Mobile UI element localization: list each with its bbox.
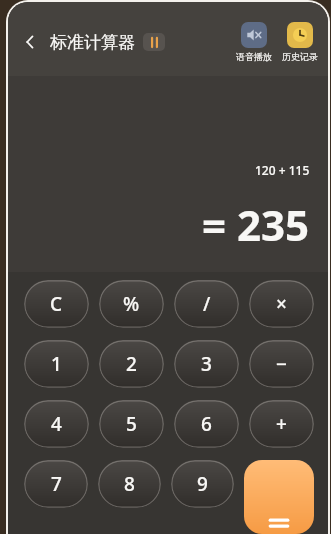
button[interactable]: 7 — [24, 460, 88, 508]
staticText: × — [276, 291, 287, 317]
staticText: 9 — [197, 471, 208, 497]
button[interactable] — [244, 460, 314, 534]
staticText: 120 + 115 — [255, 162, 310, 178]
button[interactable]: 2 — [99, 340, 164, 388]
staticText: 1 — [51, 351, 62, 377]
button[interactable]: Back — [16, 28, 44, 56]
button[interactable]: 4 — [24, 400, 89, 448]
button[interactable]: 历史记录 — [282, 22, 318, 62]
staticText: 历史记录 — [282, 51, 318, 62]
button[interactable]: 6 — [174, 400, 239, 448]
staticText: = 235 — [202, 196, 310, 253]
button[interactable]: 5 — [99, 400, 164, 448]
button[interactable]: 9 — [171, 460, 234, 508]
staticText: 语音播放 — [236, 51, 272, 62]
staticText: C — [50, 291, 63, 317]
button[interactable]: C — [24, 280, 89, 328]
button[interactable]: / — [174, 280, 239, 328]
staticText: − — [276, 351, 287, 377]
button[interactable]: × — [249, 280, 314, 328]
staticText: 2 — [126, 351, 137, 377]
staticText: 3 — [201, 351, 212, 377]
staticText: 4 — [51, 411, 62, 437]
button[interactable]: + — [249, 400, 314, 448]
staticText: / — [203, 291, 211, 317]
staticText: 标准计算器 — [50, 32, 135, 53]
button[interactable]: Switch mode — [143, 33, 165, 51]
staticText: 5 — [126, 411, 137, 437]
button[interactable]: % — [99, 280, 164, 328]
staticText: 8 — [124, 471, 135, 497]
button[interactable]: 语音播放 — [236, 22, 272, 62]
staticText: % — [123, 291, 140, 317]
button[interactable]: − — [249, 340, 314, 388]
button[interactable]: 3 — [174, 340, 239, 388]
button[interactable]: 1 — [24, 340, 89, 388]
staticText: 6 — [201, 411, 212, 437]
button[interactable]: 8 — [98, 460, 161, 508]
staticText: 7 — [51, 471, 62, 497]
staticText: + — [276, 411, 287, 437]
